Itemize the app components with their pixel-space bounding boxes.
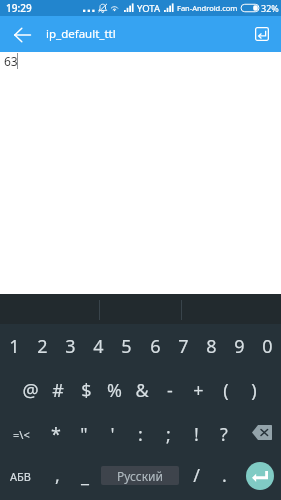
button[interactable]: * bbox=[42, 412, 70, 456]
button[interactable]: ; bbox=[154, 412, 182, 456]
button[interactable]: 3 bbox=[56, 324, 84, 368]
staticText: =\< bbox=[13, 427, 30, 442]
button[interactable]: 2 bbox=[28, 324, 56, 368]
button[interactable]: . bbox=[210, 453, 238, 497]
staticText: % bbox=[107, 378, 122, 403]
staticText: _ bbox=[81, 463, 89, 488]
button[interactable]: : bbox=[126, 412, 154, 456]
button[interactable]: =\< bbox=[4, 422, 38, 446]
staticText: # bbox=[52, 378, 64, 403]
button[interactable]: 8 bbox=[197, 324, 225, 368]
staticText: " bbox=[80, 422, 88, 447]
button[interactable]: ! bbox=[182, 412, 210, 456]
staticText: : bbox=[138, 422, 143, 447]
staticText: 19:29 bbox=[6, 1, 32, 15]
button[interactable]: ) bbox=[240, 368, 268, 412]
staticText: 0 bbox=[262, 334, 273, 359]
button[interactable]: 7 bbox=[169, 324, 197, 368]
button[interactable]: / bbox=[182, 453, 210, 497]
staticText: / bbox=[193, 463, 200, 488]
button[interactable]: @ bbox=[16, 368, 44, 412]
staticText: + bbox=[193, 378, 204, 403]
button[interactable]: Enter bbox=[246, 462, 274, 490]
button[interactable]: - bbox=[156, 368, 184, 412]
staticText: $ bbox=[81, 378, 92, 403]
staticText: 32% bbox=[261, 2, 279, 14]
staticText: АБВ bbox=[10, 469, 31, 484]
button[interactable]: # bbox=[44, 368, 72, 412]
button[interactable]: 5 bbox=[112, 324, 140, 368]
staticText: - bbox=[167, 378, 173, 403]
staticText: * bbox=[51, 422, 61, 447]
staticText: , bbox=[55, 463, 60, 488]
button[interactable]: Enter bbox=[255, 27, 269, 41]
button[interactable]: ( bbox=[212, 368, 240, 412]
staticText: 5 bbox=[121, 334, 132, 359]
staticText: Fan-Android.com bbox=[177, 3, 238, 13]
staticText: 3 bbox=[65, 334, 76, 359]
button[interactable]: " bbox=[70, 412, 98, 456]
staticText: 2 bbox=[37, 334, 48, 359]
staticText: 6 bbox=[150, 334, 161, 359]
button[interactable]: ' bbox=[98, 412, 126, 456]
button[interactable]: & bbox=[128, 368, 156, 412]
button[interactable]: 6 bbox=[141, 324, 169, 368]
staticText: . bbox=[222, 463, 227, 488]
staticText: 8 bbox=[206, 334, 217, 359]
button[interactable]: Русский bbox=[101, 466, 179, 485]
button[interactable]: + bbox=[184, 368, 212, 412]
button[interactable]: 1 bbox=[0, 324, 28, 368]
staticText: 9 bbox=[234, 334, 245, 359]
button[interactable]: 0 bbox=[253, 324, 281, 368]
staticText: 63 bbox=[4, 53, 18, 69]
staticText: 1 bbox=[9, 334, 20, 359]
staticText: ' bbox=[110, 422, 115, 447]
staticText: ; bbox=[166, 422, 171, 447]
button[interactable]: Back bbox=[0, 16, 44, 52]
button[interactable]: $ bbox=[72, 368, 100, 412]
staticText: ? bbox=[220, 422, 228, 447]
staticText: ) bbox=[251, 378, 257, 403]
staticText: ( bbox=[223, 378, 229, 403]
button[interactable]: АБВ bbox=[5, 466, 36, 486]
staticText: YOTA bbox=[137, 2, 161, 15]
button[interactable]: ? bbox=[210, 412, 238, 456]
button[interactable]: , bbox=[43, 453, 71, 497]
button[interactable]: Backspace bbox=[252, 425, 272, 440]
staticText: ! bbox=[194, 422, 199, 447]
staticText: Русский bbox=[117, 468, 163, 484]
button[interactable]: 4 bbox=[84, 324, 112, 368]
staticText: ip_default_ttl bbox=[46, 26, 116, 42]
staticText: 4 bbox=[93, 334, 104, 359]
button[interactable]: _ bbox=[71, 453, 99, 497]
button[interactable]: 9 bbox=[225, 324, 253, 368]
button[interactable]: % bbox=[100, 368, 128, 412]
staticText: @ bbox=[22, 378, 39, 403]
staticText: 7 bbox=[178, 334, 189, 359]
staticText: & bbox=[135, 378, 149, 403]
